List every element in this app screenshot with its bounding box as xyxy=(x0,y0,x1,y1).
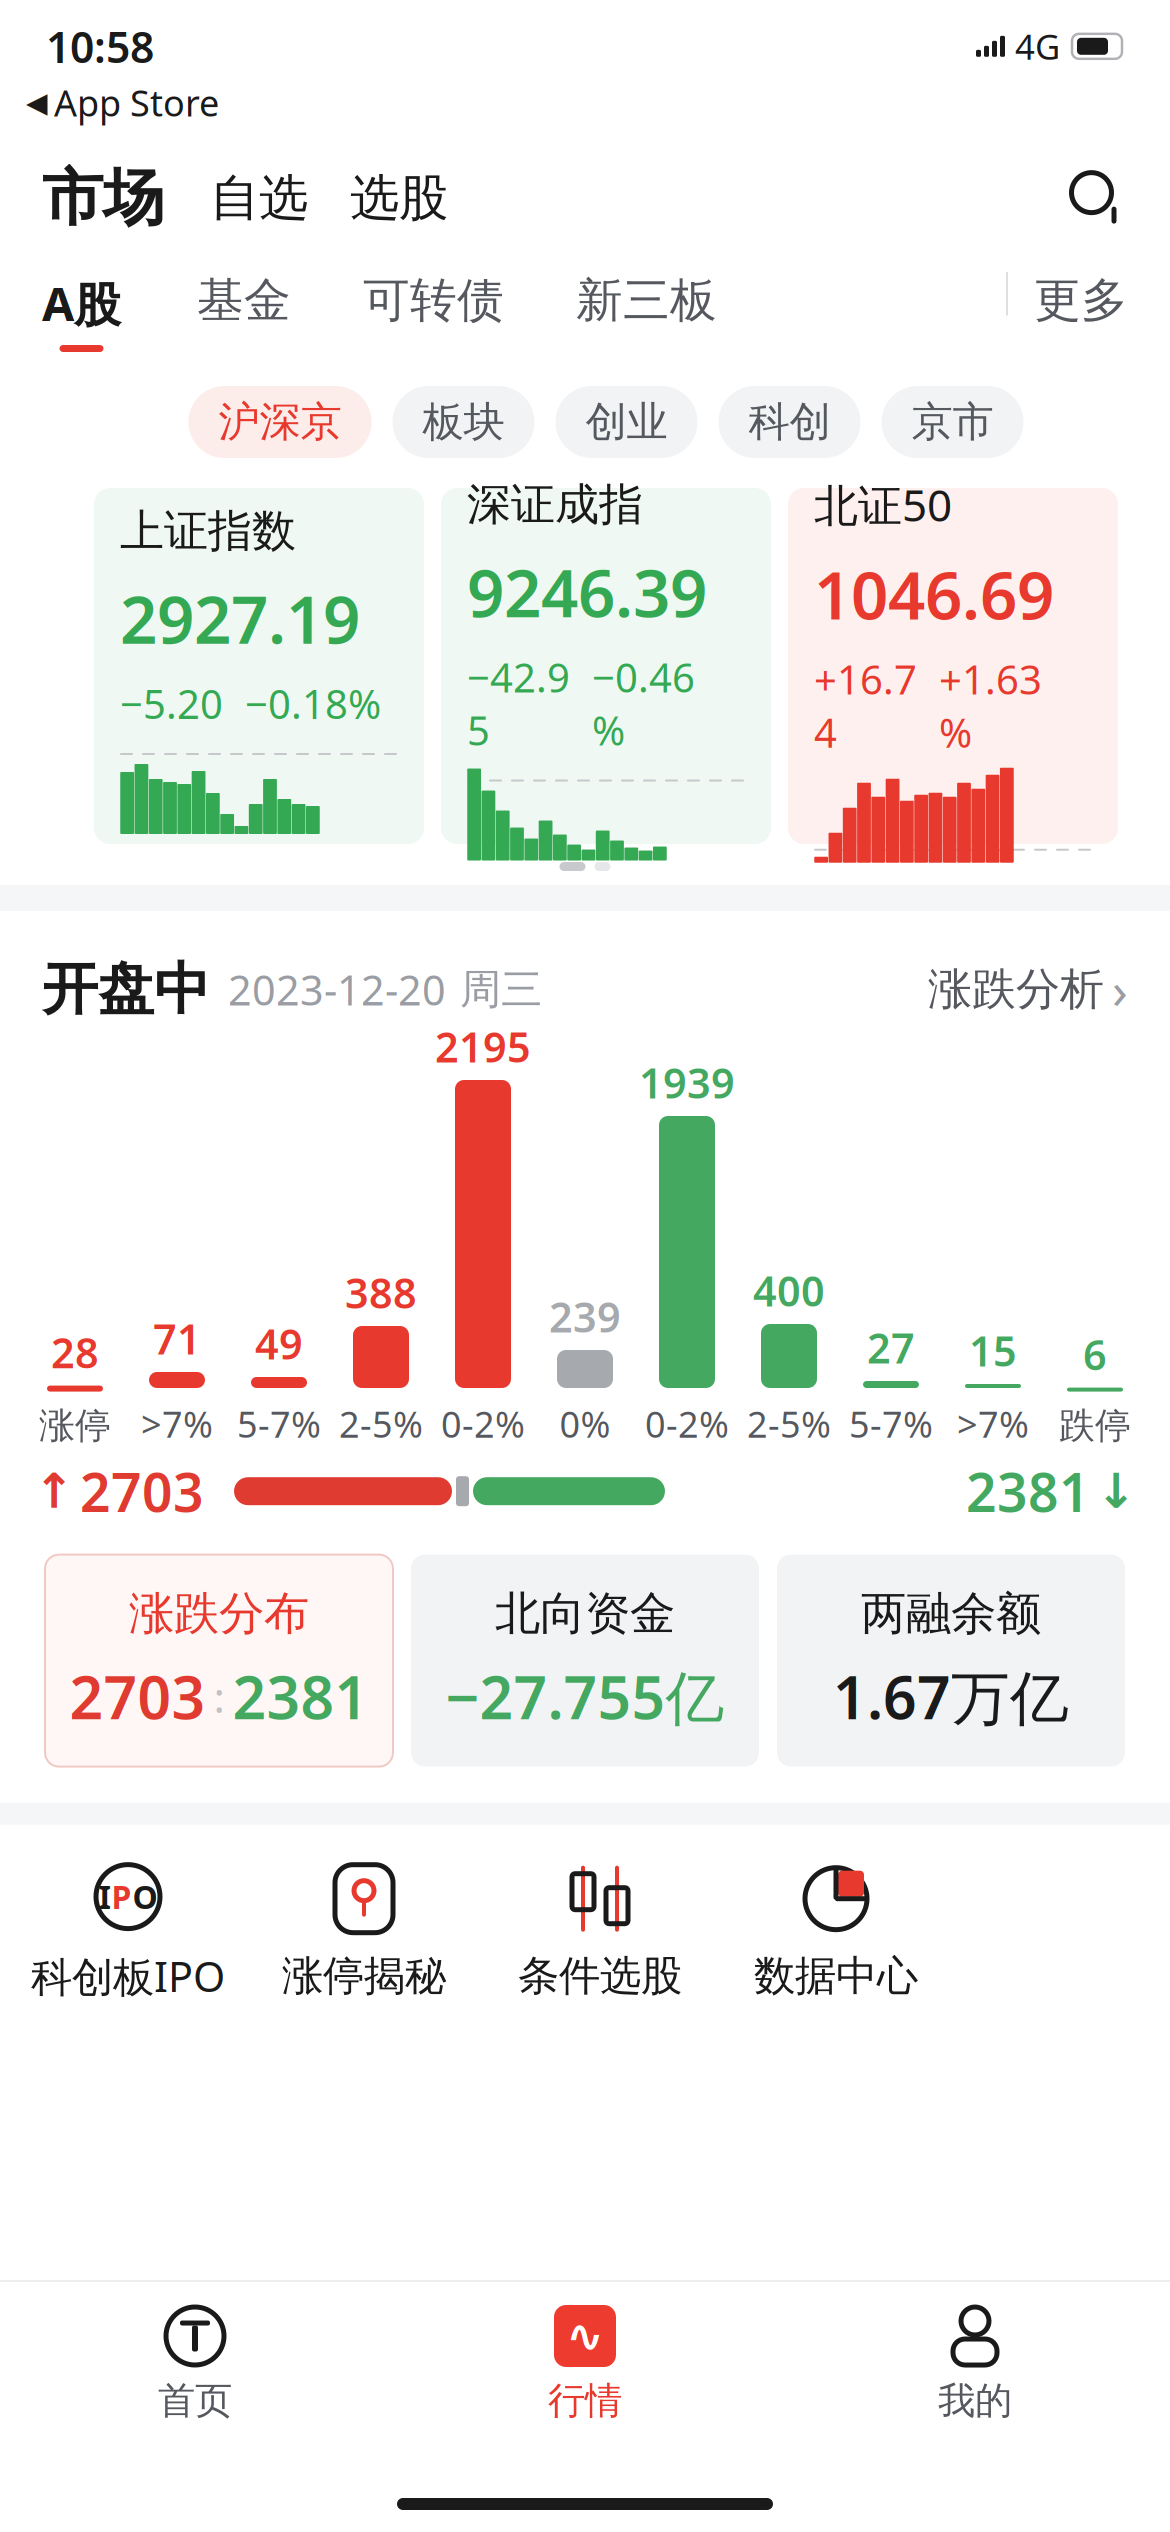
staticText: 71 xyxy=(153,1311,201,1366)
staticText: >7% xyxy=(957,1400,1029,1448)
button[interactable]: 市场 xyxy=(42,160,164,236)
button[interactable]: 更多 xyxy=(1034,272,1128,329)
button[interactable]: 科创 xyxy=(718,386,860,458)
staticText: −42.95 xyxy=(467,650,570,756)
staticText: O xyxy=(132,1875,157,1918)
staticText: 2-5% xyxy=(339,1400,423,1448)
staticText: 1046.69 xyxy=(814,551,1054,637)
button[interactable]: A股 xyxy=(42,272,121,352)
staticText: 周三 xyxy=(460,964,542,1015)
staticText: 涨停 xyxy=(39,1404,111,1448)
button[interactable]: Search xyxy=(1066,167,1128,229)
staticText: 2703 xyxy=(69,1657,205,1735)
staticText: 可转债 xyxy=(363,272,504,329)
button[interactable]: 两融余额 xyxy=(777,1555,1125,1767)
button[interactable]: ∿ xyxy=(390,2304,780,2424)
staticText: 2381 xyxy=(232,1657,368,1735)
staticText: ↑ xyxy=(34,1464,74,1518)
staticText: 5-7% xyxy=(237,1400,321,1448)
button[interactable]: 上证指数 xyxy=(94,488,424,844)
button[interactable]: 条件选股 xyxy=(482,1863,718,2001)
staticText: 我的 xyxy=(938,2378,1012,2424)
staticText: 2703 xyxy=(80,1456,204,1527)
staticText: 15 xyxy=(969,1323,1017,1378)
staticText: 板块 xyxy=(422,397,504,447)
staticText: −5.20 xyxy=(120,677,223,730)
staticText: 深证成指 xyxy=(467,477,643,531)
staticText: 新三板 xyxy=(576,272,717,329)
staticText: 1939 xyxy=(639,1055,735,1110)
staticText: 涨跌分析 xyxy=(928,962,1104,1016)
staticText: 10:58 xyxy=(46,18,154,75)
staticText: >7% xyxy=(141,1400,213,1448)
staticText: +1.63% xyxy=(939,652,1042,759)
staticText: 北向资金 xyxy=(495,1586,675,1641)
staticText: 涨停揭秘 xyxy=(282,1951,446,2001)
staticText: : xyxy=(213,1668,224,1725)
staticText: 2-5% xyxy=(747,1400,831,1448)
staticText: 选股 xyxy=(350,168,448,228)
staticText: 1.67万亿 xyxy=(833,1657,1069,1735)
button[interactable]: 可转债 xyxy=(291,272,504,329)
button[interactable]: 沪深京 xyxy=(188,386,371,458)
staticText: › xyxy=(1112,956,1128,1023)
button[interactable]: 自选 xyxy=(164,168,308,228)
staticText: 科创 xyxy=(748,397,830,447)
staticText: 400 xyxy=(753,1263,825,1318)
button[interactable]: I xyxy=(10,1861,246,2003)
staticText: 2381 xyxy=(966,1456,1090,1527)
button[interactable]: 涨跌分布 xyxy=(45,1555,393,1767)
staticText: 自选 xyxy=(210,168,308,228)
staticText: A股 xyxy=(42,272,121,334)
staticText: 更多 xyxy=(1034,272,1128,329)
button[interactable]: 涨跌分析 xyxy=(928,956,1128,1023)
button[interactable]: 北证50 xyxy=(788,488,1118,844)
staticText: 跌停 xyxy=(1059,1404,1131,1448)
staticText: −0.18% xyxy=(245,677,381,730)
button[interactable]: 新三板 xyxy=(504,272,717,329)
staticText: 28 xyxy=(51,1325,99,1380)
button[interactable]: 板块 xyxy=(392,386,534,458)
staticText: 京市 xyxy=(911,397,993,447)
staticText: 市场 xyxy=(42,160,164,236)
staticText: 基金 xyxy=(197,272,291,329)
staticText: 4G xyxy=(1015,23,1060,69)
staticText: 2927.19 xyxy=(120,575,360,662)
button[interactable]: 基金 xyxy=(121,272,291,329)
staticText: 0-2% xyxy=(645,1400,729,1448)
staticText: ◀ xyxy=(26,87,48,118)
staticText: 开盘中 xyxy=(42,955,210,1024)
button[interactable]: 深证成指 xyxy=(441,488,771,844)
staticText: I xyxy=(98,1875,110,1918)
staticText: P xyxy=(111,1875,131,1918)
staticText: 5-7% xyxy=(849,1400,933,1448)
button[interactable]: 选股 xyxy=(308,168,448,228)
staticText: App Store xyxy=(54,79,219,126)
staticText: 6 xyxy=(1083,1327,1107,1382)
staticText: 数据中心 xyxy=(754,1951,918,2001)
staticText: 上证指数 xyxy=(120,504,296,558)
staticText: 0% xyxy=(559,1400,610,1448)
staticText: 27 xyxy=(867,1320,915,1375)
staticText: 科创板IPO xyxy=(31,1949,225,2003)
staticText: ∿ xyxy=(566,2310,604,2362)
staticText: 0-2% xyxy=(441,1400,525,1448)
staticText: 2023-12-20 xyxy=(228,962,446,1017)
staticText: 388 xyxy=(345,1265,417,1320)
staticText: 创业 xyxy=(585,397,667,447)
button[interactable]: 涨停揭秘 xyxy=(246,1863,482,2001)
button[interactable]: 北向资金 xyxy=(411,1555,759,1767)
button[interactable]: 京市 xyxy=(881,386,1023,458)
staticText: 条件选股 xyxy=(518,1951,682,2001)
staticText: 两融余额 xyxy=(861,1586,1041,1641)
staticText: 49 xyxy=(255,1316,303,1371)
staticText: 北证50 xyxy=(814,475,952,534)
staticText: 9246.39 xyxy=(467,548,707,635)
button[interactable]: 创业 xyxy=(555,386,697,458)
button[interactable]: 首页 xyxy=(0,2304,390,2424)
staticText: 涨跌分布 xyxy=(129,1586,309,1641)
staticText: ↓ xyxy=(1096,1464,1136,1518)
staticText: −0.46% xyxy=(592,650,695,756)
button[interactable]: 数据中心 xyxy=(718,1863,954,2001)
button[interactable]: 我的 xyxy=(780,2304,1170,2424)
